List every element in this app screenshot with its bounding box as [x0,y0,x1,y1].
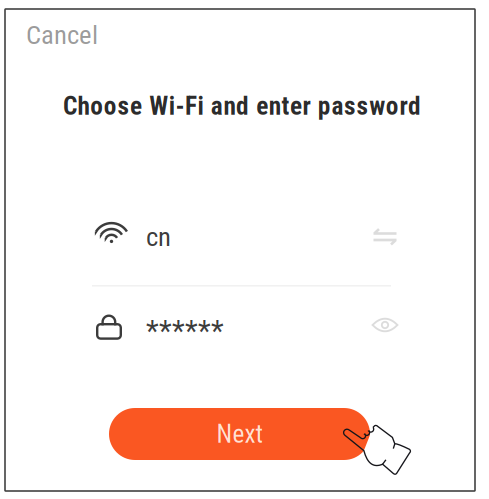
button[interactable]: Cancel [26,22,106,48]
staticText: cn [146,221,171,253]
button[interactable]: Wi-Fi network [92,211,391,257]
staticText: Choose Wi-Fi and enter password [63,91,421,121]
staticText: ****** [146,314,224,348]
button[interactable]: Next [109,408,370,460]
button[interactable]: Password [92,303,391,349]
button[interactable]: Show password [366,310,404,340]
staticText: Cancel [26,19,98,51]
button[interactable]: Switch network [366,220,404,254]
staticText: Next [216,419,262,449]
